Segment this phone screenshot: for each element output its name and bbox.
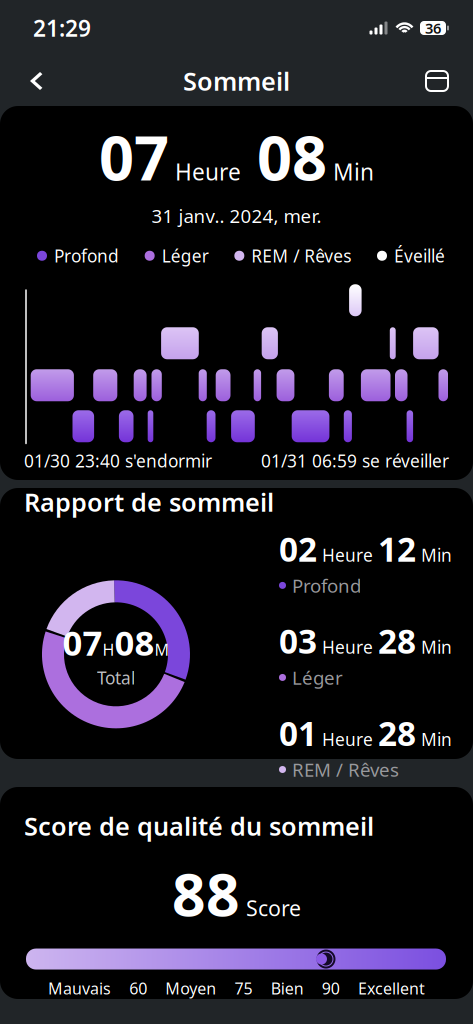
staticText: 12: [378, 527, 416, 571]
staticText: 08: [114, 619, 154, 665]
staticText: Score de qualité du sommeil: [24, 809, 374, 843]
staticText: Total: [97, 666, 135, 689]
staticText: 60: [129, 977, 147, 999]
staticText: M: [154, 639, 169, 660]
staticText: Heure: [317, 636, 378, 659]
staticText: Heure: [317, 728, 378, 751]
staticText: Mauvais: [48, 977, 111, 999]
staticText: Heure: [317, 544, 378, 567]
staticText: 88: [172, 855, 240, 932]
staticText: 08: [241, 116, 327, 197]
staticText: 36: [425, 18, 441, 38]
staticText: 21:29: [33, 13, 91, 43]
staticText: 75: [234, 977, 252, 999]
staticText: Profond: [292, 573, 361, 598]
staticText: 02: [279, 527, 317, 571]
staticText: Min: [416, 636, 452, 659]
button[interactable]: Back: [14, 59, 58, 103]
staticText: Moyen: [165, 977, 216, 999]
staticText: Min: [327, 157, 374, 187]
staticText: Bien: [271, 977, 304, 999]
staticText: 01: [279, 711, 317, 755]
staticText: Score: [240, 894, 301, 922]
button[interactable]: Calendar: [415, 59, 459, 103]
staticText: H: [102, 639, 114, 660]
staticText: Heure: [169, 157, 241, 187]
staticText: 03: [279, 619, 317, 663]
staticText: Min: [416, 728, 452, 751]
staticText: Min: [416, 544, 452, 567]
staticText: Éveillé: [394, 244, 445, 267]
staticText: Sommeil: [183, 64, 290, 98]
staticText: 31 janv.. 2024, mer.: [151, 203, 321, 228]
staticText: Léger: [292, 665, 343, 690]
staticText: Profond: [54, 244, 119, 267]
staticText: REM / Rêves: [251, 244, 351, 267]
staticText: 01/31 06:59 se réveiller: [261, 449, 449, 472]
staticText: Rapport de sommeil: [24, 485, 274, 519]
staticText: 01/30 23:40 s'endormir: [24, 449, 212, 472]
staticText: Léger: [162, 244, 209, 267]
staticText: 28: [378, 619, 416, 663]
staticText: REM / Rêves: [292, 757, 399, 782]
staticText: 07: [99, 116, 169, 197]
staticText: 07: [62, 619, 102, 665]
staticText: Excellent: [358, 977, 425, 999]
staticText: 28: [378, 711, 416, 755]
staticText: 90: [322, 977, 340, 999]
